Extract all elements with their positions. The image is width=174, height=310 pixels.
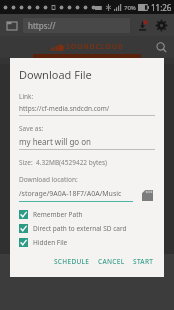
staticText: Hidden File [33,238,68,247]
button[interactable]: Hidden File [19,238,155,247]
staticText: SOUNDCLOUD [66,42,124,52]
button[interactable]: Downloads [135,18,150,33]
staticText: 11:26 [151,2,172,13]
staticText: Direct path to external SD card [33,224,127,233]
staticText: Download File [19,67,92,82]
button[interactable]: SCHEDULE [53,255,91,268]
staticText: CANCEL [98,257,125,266]
button[interactable]: CANCEL [97,255,126,268]
button[interactable]: https://m.soundcloud.com [23,18,130,33]
staticText: 70% [124,4,136,12]
staticText: START [133,257,154,266]
button[interactable]: Direct path to external SD card [19,224,155,233]
button[interactable]: my heart will go on [19,136,155,150]
button[interactable]: Choose SD card folder [139,187,155,203]
staticText: https://m.soundcloud.com [28,20,125,31]
staticText: my heart will go on [19,136,92,147]
staticText: Link: [19,92,34,101]
staticText: Download location: [19,175,78,184]
button[interactable]: Tabs [5,18,19,32]
staticText: Remember Path [33,210,83,219]
staticText: Save as: [19,124,44,133]
button[interactable]: https://cf-media.sndcdn.com/qXnb6T6c0mCx… [19,104,155,116]
button[interactable]: Settings [154,18,169,33]
button[interactable]: Remember Path [19,210,155,219]
staticText: /storage/9A0A-18F7/A0A/Music [19,189,122,199]
staticText: SCHEDULE [54,257,90,266]
staticText: https://cf-media.sndcdn.com/qXnb6T6c0mCx… [19,104,155,113]
button[interactable]: START [132,255,155,268]
staticText: Size: 4.32MB(4529422 bytes) [19,158,108,167]
button[interactable]: Search [153,39,169,55]
